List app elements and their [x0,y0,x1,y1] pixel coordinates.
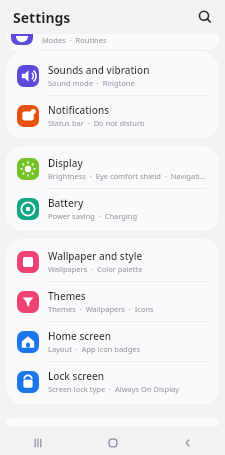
staticText: Screen lock type · Always On Display [48,384,180,394]
staticText: Lock screen [48,369,105,383]
staticText: Notifications [48,103,110,117]
button[interactable]: Sounds and vibration [6,56,219,95]
button[interactable]: Search [194,6,216,28]
staticText: Themes [48,289,86,303]
staticText: Modes · Routines [42,35,107,45]
staticText: Home screen [48,329,111,343]
staticText: Brightness · Eye comfort shield · Naviga… [48,171,207,181]
button[interactable]: Back [150,424,225,455]
staticText: Sound mode · Ringtone [48,78,135,88]
staticText: Wallpaper and style [48,249,143,263]
staticText: Sounds and vibration [48,63,150,77]
button[interactable]: Battery [6,189,219,228]
button[interactable]: Recent apps [0,424,75,455]
button[interactable]: Wallpaper and style [6,242,219,281]
staticText: Battery [48,196,84,210]
button[interactable]: Modes · Routines [6,34,219,53]
staticText: Wallpapers · Color palette [48,264,143,274]
button[interactable]: Display [6,149,219,188]
staticText: Settings [13,8,71,27]
staticText: Layout · App icon badges [48,344,141,354]
button[interactable]: Lock screen [6,362,219,401]
button[interactable]: Home [75,424,150,455]
staticText: Themes · Wallpapers · Icons [48,304,154,314]
button[interactable]: Notifications [6,96,219,135]
staticText: Power saving · Charging [48,211,138,221]
button[interactable]: Themes [6,282,219,321]
staticText: Display [48,156,83,170]
button[interactable]: Home screen [6,322,219,361]
staticText: Status bar · Do not disturb [48,118,145,128]
